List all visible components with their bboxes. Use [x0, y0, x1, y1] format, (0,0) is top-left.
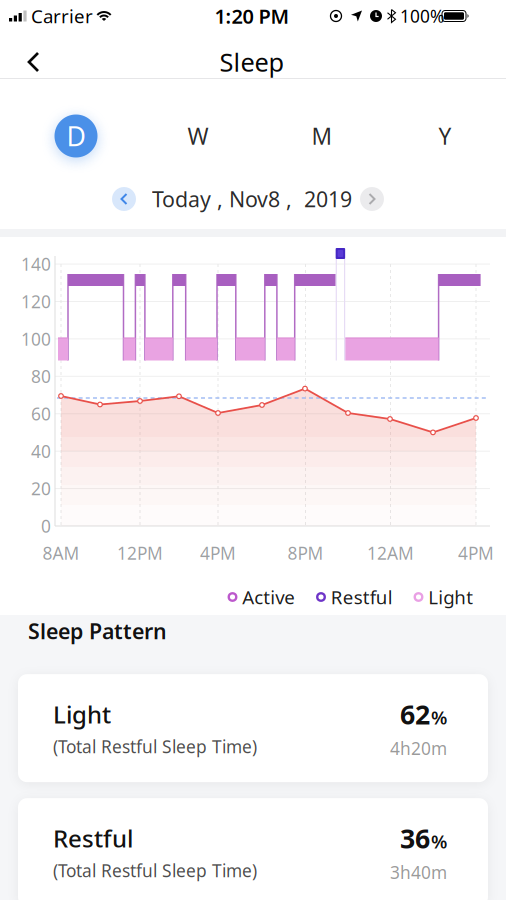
- staticText: 1:20 PM: [214, 3, 289, 29]
- button[interactable]: M: [303, 113, 340, 159]
- staticText: 20: [31, 477, 51, 500]
- staticText: 40: [31, 440, 51, 463]
- button[interactable]: [360, 187, 384, 211]
- staticText: 8PM: [287, 541, 323, 564]
- staticText: 12AM: [367, 541, 414, 564]
- staticText: Sleep: [219, 45, 284, 79]
- staticText: W: [187, 121, 208, 151]
- staticText: 3h40m: [390, 861, 447, 884]
- staticText: %: [431, 829, 447, 854]
- staticText: 100%: [400, 4, 444, 27]
- staticText: Restful: [53, 822, 133, 854]
- staticText: 120: [21, 290, 51, 313]
- staticText: 80: [31, 365, 51, 388]
- staticText: D: [66, 118, 85, 154]
- staticText: Carrier: [31, 4, 93, 28]
- staticText: 4PM: [200, 541, 236, 564]
- staticText: (Total Restful Sleep Time): [53, 859, 257, 882]
- staticText: 100: [21, 327, 51, 350]
- staticText: Light: [428, 585, 473, 609]
- button[interactable]: [112, 187, 136, 211]
- staticText: Active: [242, 585, 295, 609]
- staticText: 36: [400, 820, 430, 856]
- staticText: 4h20m: [390, 737, 447, 760]
- staticText: Y: [438, 121, 451, 151]
- staticText: 4PM: [458, 541, 494, 564]
- staticText: 8AM: [42, 541, 79, 564]
- button[interactable]: W: [179, 113, 216, 159]
- staticText: M: [311, 121, 332, 151]
- staticText: 140: [21, 253, 51, 276]
- button[interactable]: Restful: [18, 798, 488, 900]
- staticText: 12PM: [117, 541, 163, 564]
- staticText: %: [431, 705, 447, 730]
- staticText: Light: [53, 698, 111, 730]
- button[interactable]: Light: [18, 674, 488, 782]
- button[interactable]: D: [54, 114, 97, 157]
- button[interactable]: Y: [430, 113, 459, 159]
- staticText: Restful: [331, 585, 393, 609]
- staticText: 60: [31, 402, 51, 425]
- staticText: 62: [400, 696, 430, 732]
- staticText: Today , Nov8 , 2019: [152, 185, 352, 213]
- staticText: 0: [41, 514, 51, 537]
- staticText: (Total Restful Sleep Time): [53, 735, 257, 758]
- staticText: Sleep Pattern: [28, 617, 167, 645]
- button[interactable]: [17, 41, 51, 83]
